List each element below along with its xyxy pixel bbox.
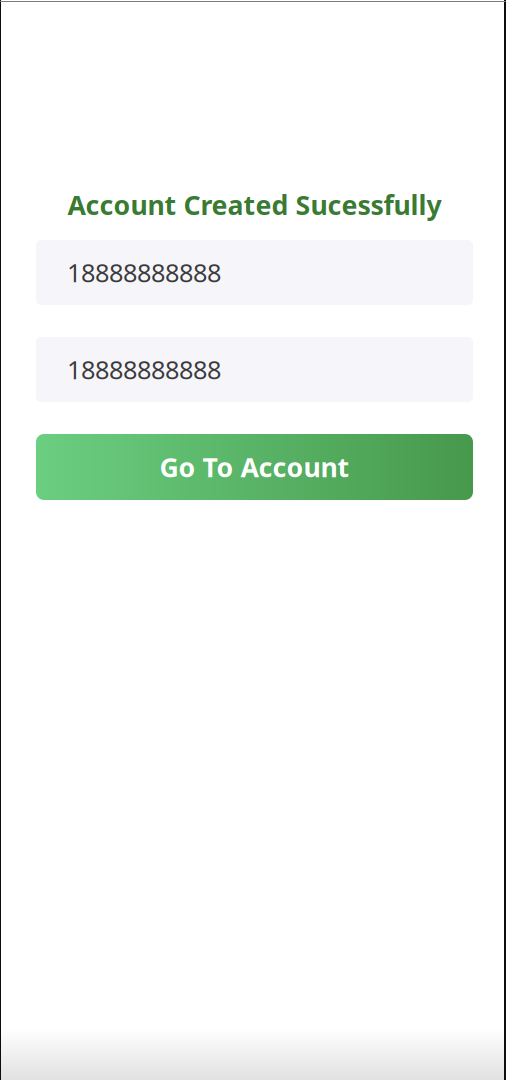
staticText: 18888888888 <box>67 256 221 289</box>
staticText: Go To Account <box>159 449 349 485</box>
button[interactable]: 18888888888 <box>36 240 473 305</box>
button[interactable]: 18888888888 <box>36 337 473 402</box>
staticText: Account Created Sucessfully <box>67 187 441 222</box>
staticText: 18888888888 <box>67 353 221 386</box>
button[interactable]: Go To Account <box>36 434 473 500</box>
